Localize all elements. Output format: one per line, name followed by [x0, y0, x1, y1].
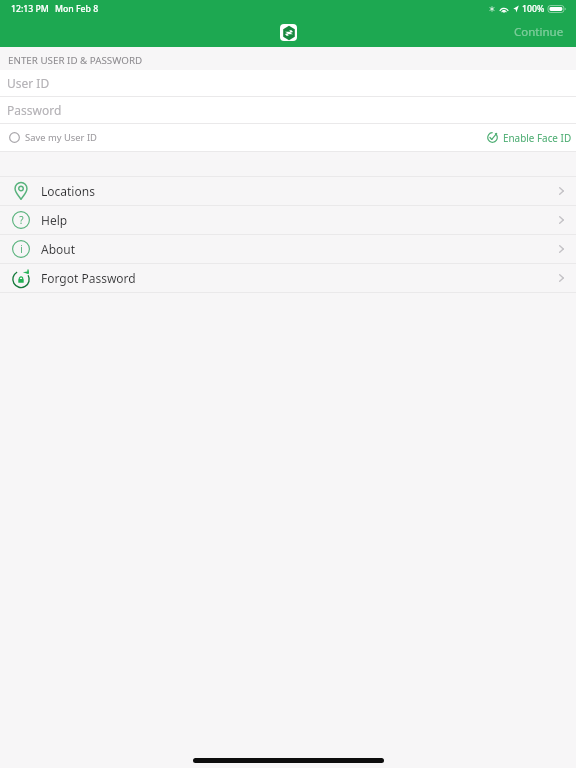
button[interactable]: Save my User ID — [0, 124, 105, 151]
staticText: 100% — [522, 3, 545, 15]
button[interactable]: Continue — [500, 18, 576, 47]
staticText: ? — [19, 213, 24, 227]
staticText: Continue — [514, 24, 564, 40]
staticText: Enable Face ID — [503, 131, 572, 144]
button[interactable]: ? — [0, 206, 576, 234]
staticText: Password — [7, 102, 62, 118]
button[interactable]: App logo — [280, 24, 297, 41]
button[interactable]: Locations — [0, 177, 576, 205]
button[interactable]: i — [0, 235, 576, 263]
button[interactable]: Forgot Password — [0, 264, 576, 292]
staticText: Locations — [41, 183, 95, 199]
button[interactable]: User ID — [0, 70, 576, 96]
staticText: Save my User ID — [25, 131, 97, 144]
staticText: About — [41, 241, 76, 257]
staticText: Forgot Password — [41, 270, 136, 286]
staticText: User ID — [7, 75, 50, 91]
staticText: Mon Feb 8 — [55, 3, 99, 15]
staticText: i — [20, 242, 23, 256]
button[interactable]: Enable Face ID — [487, 124, 576, 151]
staticText: 12:13 PM — [11, 3, 49, 15]
button[interactable]: Password — [0, 97, 576, 123]
staticText: Help — [41, 212, 68, 228]
staticText: ENTER USER ID & PASSWORD — [8, 54, 143, 67]
